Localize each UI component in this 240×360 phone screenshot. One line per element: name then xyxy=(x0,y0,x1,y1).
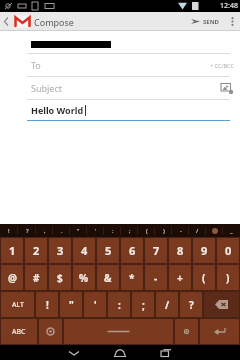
button[interactable]: : xyxy=(108,292,130,317)
button[interactable]: ( xyxy=(193,265,215,290)
button[interactable]: Delete xyxy=(204,292,239,317)
button[interactable]: % xyxy=(73,265,95,290)
button[interactable]: More options xyxy=(224,12,240,31)
button[interactable]: Recent apps xyxy=(143,345,189,360)
button[interactable]: ( xyxy=(138,224,155,237)
staticText: Hello World xyxy=(31,104,84,116)
button[interactable]: ) xyxy=(155,224,172,237)
staticText: * xyxy=(129,271,135,285)
staticText: . xyxy=(61,227,63,235)
button[interactable]: Keyboard settings xyxy=(39,319,62,344)
staticText: _ xyxy=(230,227,233,235)
button[interactable]: Hide keyboard xyxy=(51,345,97,360)
button[interactable] xyxy=(0,35,240,53)
staticText: ALT xyxy=(12,300,24,310)
staticText: ) xyxy=(226,271,230,285)
button[interactable]: SEND xyxy=(185,12,224,31)
button[interactable]: / xyxy=(156,292,178,317)
button[interactable]: ? xyxy=(180,292,202,317)
button[interactable]: , xyxy=(36,224,53,237)
button[interactable]: Space xyxy=(64,319,173,344)
button[interactable]: 4 xyxy=(73,238,95,263)
button[interactable]: ! xyxy=(0,224,18,237)
staticText: ; xyxy=(142,298,145,312)
staticText: + xyxy=(177,271,183,285)
staticText: - xyxy=(180,227,182,235)
button[interactable]: ) xyxy=(217,265,239,290)
button[interactable]: 9 xyxy=(193,238,215,263)
staticText: @ xyxy=(8,271,17,285)
staticText: To xyxy=(31,59,210,71)
staticText: / xyxy=(165,298,170,312)
staticText: 0 xyxy=(225,243,232,258)
button[interactable]: _ xyxy=(223,224,240,237)
staticText: ' xyxy=(94,298,97,312)
staticText: ' xyxy=(95,227,97,235)
staticText: ! xyxy=(46,298,49,312)
button[interactable]: ; xyxy=(132,292,154,317)
button[interactable]: ! xyxy=(36,292,58,317)
button[interactable]: 1 xyxy=(1,238,23,263)
button[interactable]: 0 xyxy=(217,238,239,263)
button[interactable]: 7 xyxy=(145,238,167,263)
staticText: " xyxy=(69,298,74,312)
staticText: ! xyxy=(8,227,10,235)
staticText: : xyxy=(118,298,121,312)
button[interactable] xyxy=(206,224,223,237)
button[interactable]: To xyxy=(0,54,240,76)
staticText: ) xyxy=(163,227,165,235)
staticText: Compose xyxy=(34,16,185,28)
button[interactable]: 8 xyxy=(169,238,191,263)
staticText: ; xyxy=(129,227,131,235)
button[interactable]: / xyxy=(189,224,206,237)
button[interactable]: : xyxy=(104,224,121,237)
staticText: SEND xyxy=(203,18,219,26)
button[interactable]: 2 xyxy=(25,238,47,263)
button[interactable]: ALT xyxy=(1,292,34,317)
button[interactable]: - xyxy=(145,265,167,290)
button[interactable]: " xyxy=(70,224,87,237)
button[interactable]: Hello World xyxy=(0,100,240,120)
staticText: ABC xyxy=(12,327,26,337)
staticText: $ xyxy=(57,271,63,285)
staticText: + CC/BCC xyxy=(210,62,234,69)
button[interactable]: ; xyxy=(121,224,138,237)
staticText: 1 xyxy=(9,243,16,258)
staticText: ( xyxy=(146,227,148,235)
button[interactable]: ? xyxy=(18,224,36,237)
staticText: , xyxy=(44,227,46,235)
staticText: 3 xyxy=(57,243,64,258)
button[interactable]: * xyxy=(121,265,143,290)
button[interactable]: $ xyxy=(49,265,71,290)
button[interactable]: 5 xyxy=(97,238,119,263)
button[interactable]: & xyxy=(97,265,119,290)
staticText: " xyxy=(77,227,80,235)
button[interactable]: Enter xyxy=(200,319,239,344)
button[interactable]: ' xyxy=(87,224,104,237)
staticText: 12:48 xyxy=(220,1,238,11)
staticText: # xyxy=(33,271,40,285)
staticText: : xyxy=(112,227,114,235)
staticText: 7 xyxy=(153,243,160,258)
staticText: Subject xyxy=(31,82,219,94)
button[interactable]: - xyxy=(172,224,189,237)
staticText: % xyxy=(79,271,89,285)
button[interactable]: # xyxy=(25,265,47,290)
staticText: 2 xyxy=(33,243,40,258)
button[interactable]: " xyxy=(60,292,82,317)
staticText: ( xyxy=(202,271,206,285)
staticText: / xyxy=(196,227,199,235)
button[interactable]: Navigate up xyxy=(0,12,34,31)
button[interactable]: 6 xyxy=(121,238,143,263)
button[interactable]: Attach image xyxy=(219,80,235,96)
button[interactable]: Voice input xyxy=(175,319,198,344)
button[interactable]: . xyxy=(53,224,70,237)
staticText: ? xyxy=(189,298,194,312)
button[interactable]: Home xyxy=(97,345,143,360)
button[interactable]: @ xyxy=(1,265,23,290)
button[interactable]: ABC xyxy=(1,319,37,344)
button[interactable]: 3 xyxy=(49,238,71,263)
button[interactable]: ' xyxy=(84,292,106,317)
button[interactable]: + xyxy=(169,265,191,290)
button[interactable]: Subject xyxy=(0,77,240,99)
